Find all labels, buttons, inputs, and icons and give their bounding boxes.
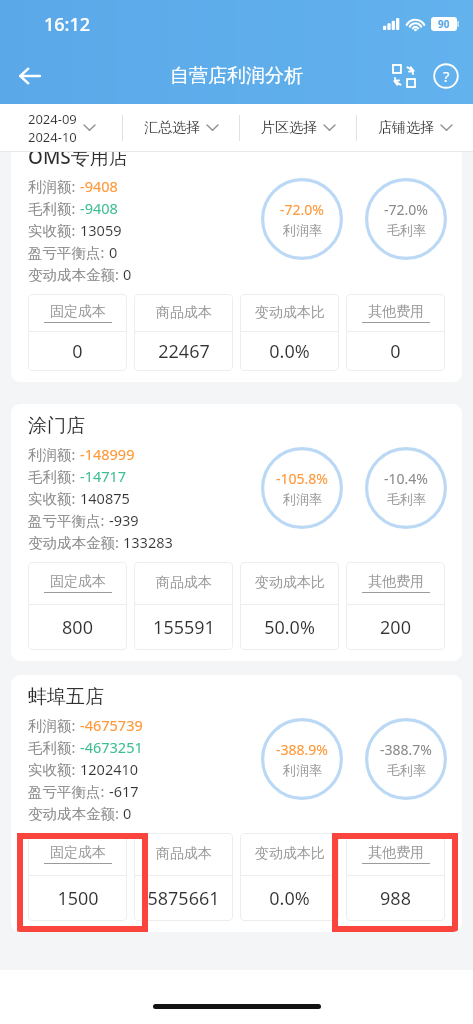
staticText: 1500 (57, 886, 99, 911)
staticText: 16:12 (44, 12, 91, 37)
button[interactable]: 2024-09 (0, 104, 122, 151)
staticText: 利润额: (28, 444, 80, 464)
staticText: 变动成本金额: (28, 532, 123, 552)
button[interactable]: 其他费用 (346, 833, 445, 921)
staticText: 200 (380, 615, 411, 640)
staticText: -148999 (80, 444, 135, 464)
staticText: 利润率 (283, 491, 322, 507)
staticText: 155591 (153, 615, 215, 640)
staticText: 50.0% (264, 615, 315, 640)
staticText: -105.8% (276, 469, 328, 488)
staticText: 0 (123, 264, 132, 284)
staticText: -4673251 (80, 737, 143, 757)
staticText: 变动成本金额: (28, 803, 123, 823)
button[interactable]: 商品成本 (134, 562, 233, 650)
button[interactable]: 蚌埠五店 (11, 675, 462, 932)
staticText: 0.0% (269, 339, 310, 364)
staticText: -10.4% (384, 469, 428, 488)
button[interactable]: 店铺选择 (357, 104, 473, 151)
button[interactable]: 商品成本 (134, 833, 233, 921)
staticText: 实收额: (28, 488, 80, 508)
staticText: 涂门店 (28, 414, 85, 438)
staticText: 盈亏平衡点: (28, 781, 109, 801)
staticText: 变动成本比 (255, 304, 325, 322)
staticText: -939 (109, 510, 139, 530)
staticText: 自营店利润分析 (170, 64, 303, 88)
staticText: 0 (72, 339, 83, 364)
staticText: 汇总选择 (144, 119, 200, 137)
button[interactable]: 固定成本 (28, 562, 127, 650)
button[interactable]: 片区选择 (240, 104, 356, 151)
staticText: 盈亏平衡点: (28, 510, 109, 530)
staticText: 800 (62, 615, 93, 640)
staticText: 毛利额: (28, 198, 80, 218)
button[interactable]: 固定成本 (28, 833, 127, 921)
staticText: -14717 (80, 466, 127, 486)
staticText: -72.0% (280, 200, 324, 219)
button[interactable]: 商品成本 (134, 294, 233, 371)
button[interactable]: 其他费用 (346, 562, 445, 650)
staticText: 毛利额: (28, 466, 80, 486)
staticText: 实收额: (28, 220, 80, 240)
staticText: 固定成本 (50, 303, 106, 321)
staticText: 毛利额: (28, 737, 80, 757)
staticText: 商品成本 (156, 845, 212, 863)
button[interactable]: OMS专用店 (11, 152, 462, 382)
staticText: 1202410 (80, 759, 139, 779)
staticText: 店铺选择 (378, 119, 434, 137)
staticText: ? (443, 66, 450, 86)
button[interactable]: 变动成本比 (240, 833, 339, 921)
staticText: 固定成本 (50, 844, 106, 862)
button[interactable]: Compare (383, 55, 425, 97)
staticText: 变动成本比 (255, 845, 325, 863)
staticText: 988 (380, 886, 411, 911)
staticText: 5875661 (147, 886, 220, 911)
button[interactable]: 其他费用 (346, 294, 445, 371)
staticText: 其他费用 (368, 844, 424, 862)
button[interactable]: Back (8, 54, 52, 98)
staticText: 2024-10 (28, 128, 77, 146)
staticText: 变动成本比 (255, 574, 325, 592)
staticText: 利润额: (28, 176, 80, 196)
staticText: 0 (390, 339, 401, 364)
staticText: -388.9% (276, 740, 328, 759)
button[interactable]: Help (425, 55, 467, 97)
staticText: 0 (109, 242, 118, 262)
staticText: 0.0% (269, 886, 310, 911)
staticText: 利润率 (283, 762, 322, 778)
button[interactable]: 涂门店 (11, 404, 462, 661)
button[interactable]: 汇总选择 (123, 104, 239, 151)
staticText: 毛利率 (387, 222, 426, 238)
staticText: 毛利率 (387, 491, 426, 507)
staticText: 其他费用 (368, 303, 424, 321)
staticText: 2024-09 (28, 110, 77, 128)
staticText: 固定成本 (50, 573, 106, 591)
staticText: 商品成本 (156, 304, 212, 322)
staticText: -4675739 (80, 715, 143, 735)
staticText: 蚌埠五店 (28, 685, 104, 709)
staticText: 利润率 (283, 222, 322, 238)
staticText: 片区选择 (261, 119, 317, 137)
staticText: 140875 (80, 488, 130, 508)
staticText: -9408 (80, 176, 118, 196)
staticText: 133283 (123, 532, 173, 552)
button[interactable]: 变动成本比 (240, 562, 339, 650)
button[interactable]: 固定成本 (28, 294, 127, 371)
staticText: 13059 (80, 220, 122, 240)
staticText: -9408 (80, 198, 118, 218)
staticText: 变动成本金额: (28, 264, 123, 284)
staticText: OMS专用店 (28, 152, 128, 170)
staticText: 盈亏平衡点: (28, 242, 109, 262)
button[interactable]: 变动成本比 (240, 294, 339, 371)
staticText: -617 (109, 781, 139, 801)
staticText: -388.7% (380, 740, 432, 759)
staticText: 实收额: (28, 759, 80, 779)
staticText: 0 (123, 803, 132, 823)
staticText: 90 (438, 17, 450, 31)
staticText: 商品成本 (156, 574, 212, 592)
staticText: 利润额: (28, 715, 80, 735)
staticText: -72.0% (384, 200, 428, 219)
staticText: 毛利率 (387, 762, 426, 778)
staticText: 其他费用 (368, 573, 424, 591)
staticText: 22467 (158, 339, 210, 364)
